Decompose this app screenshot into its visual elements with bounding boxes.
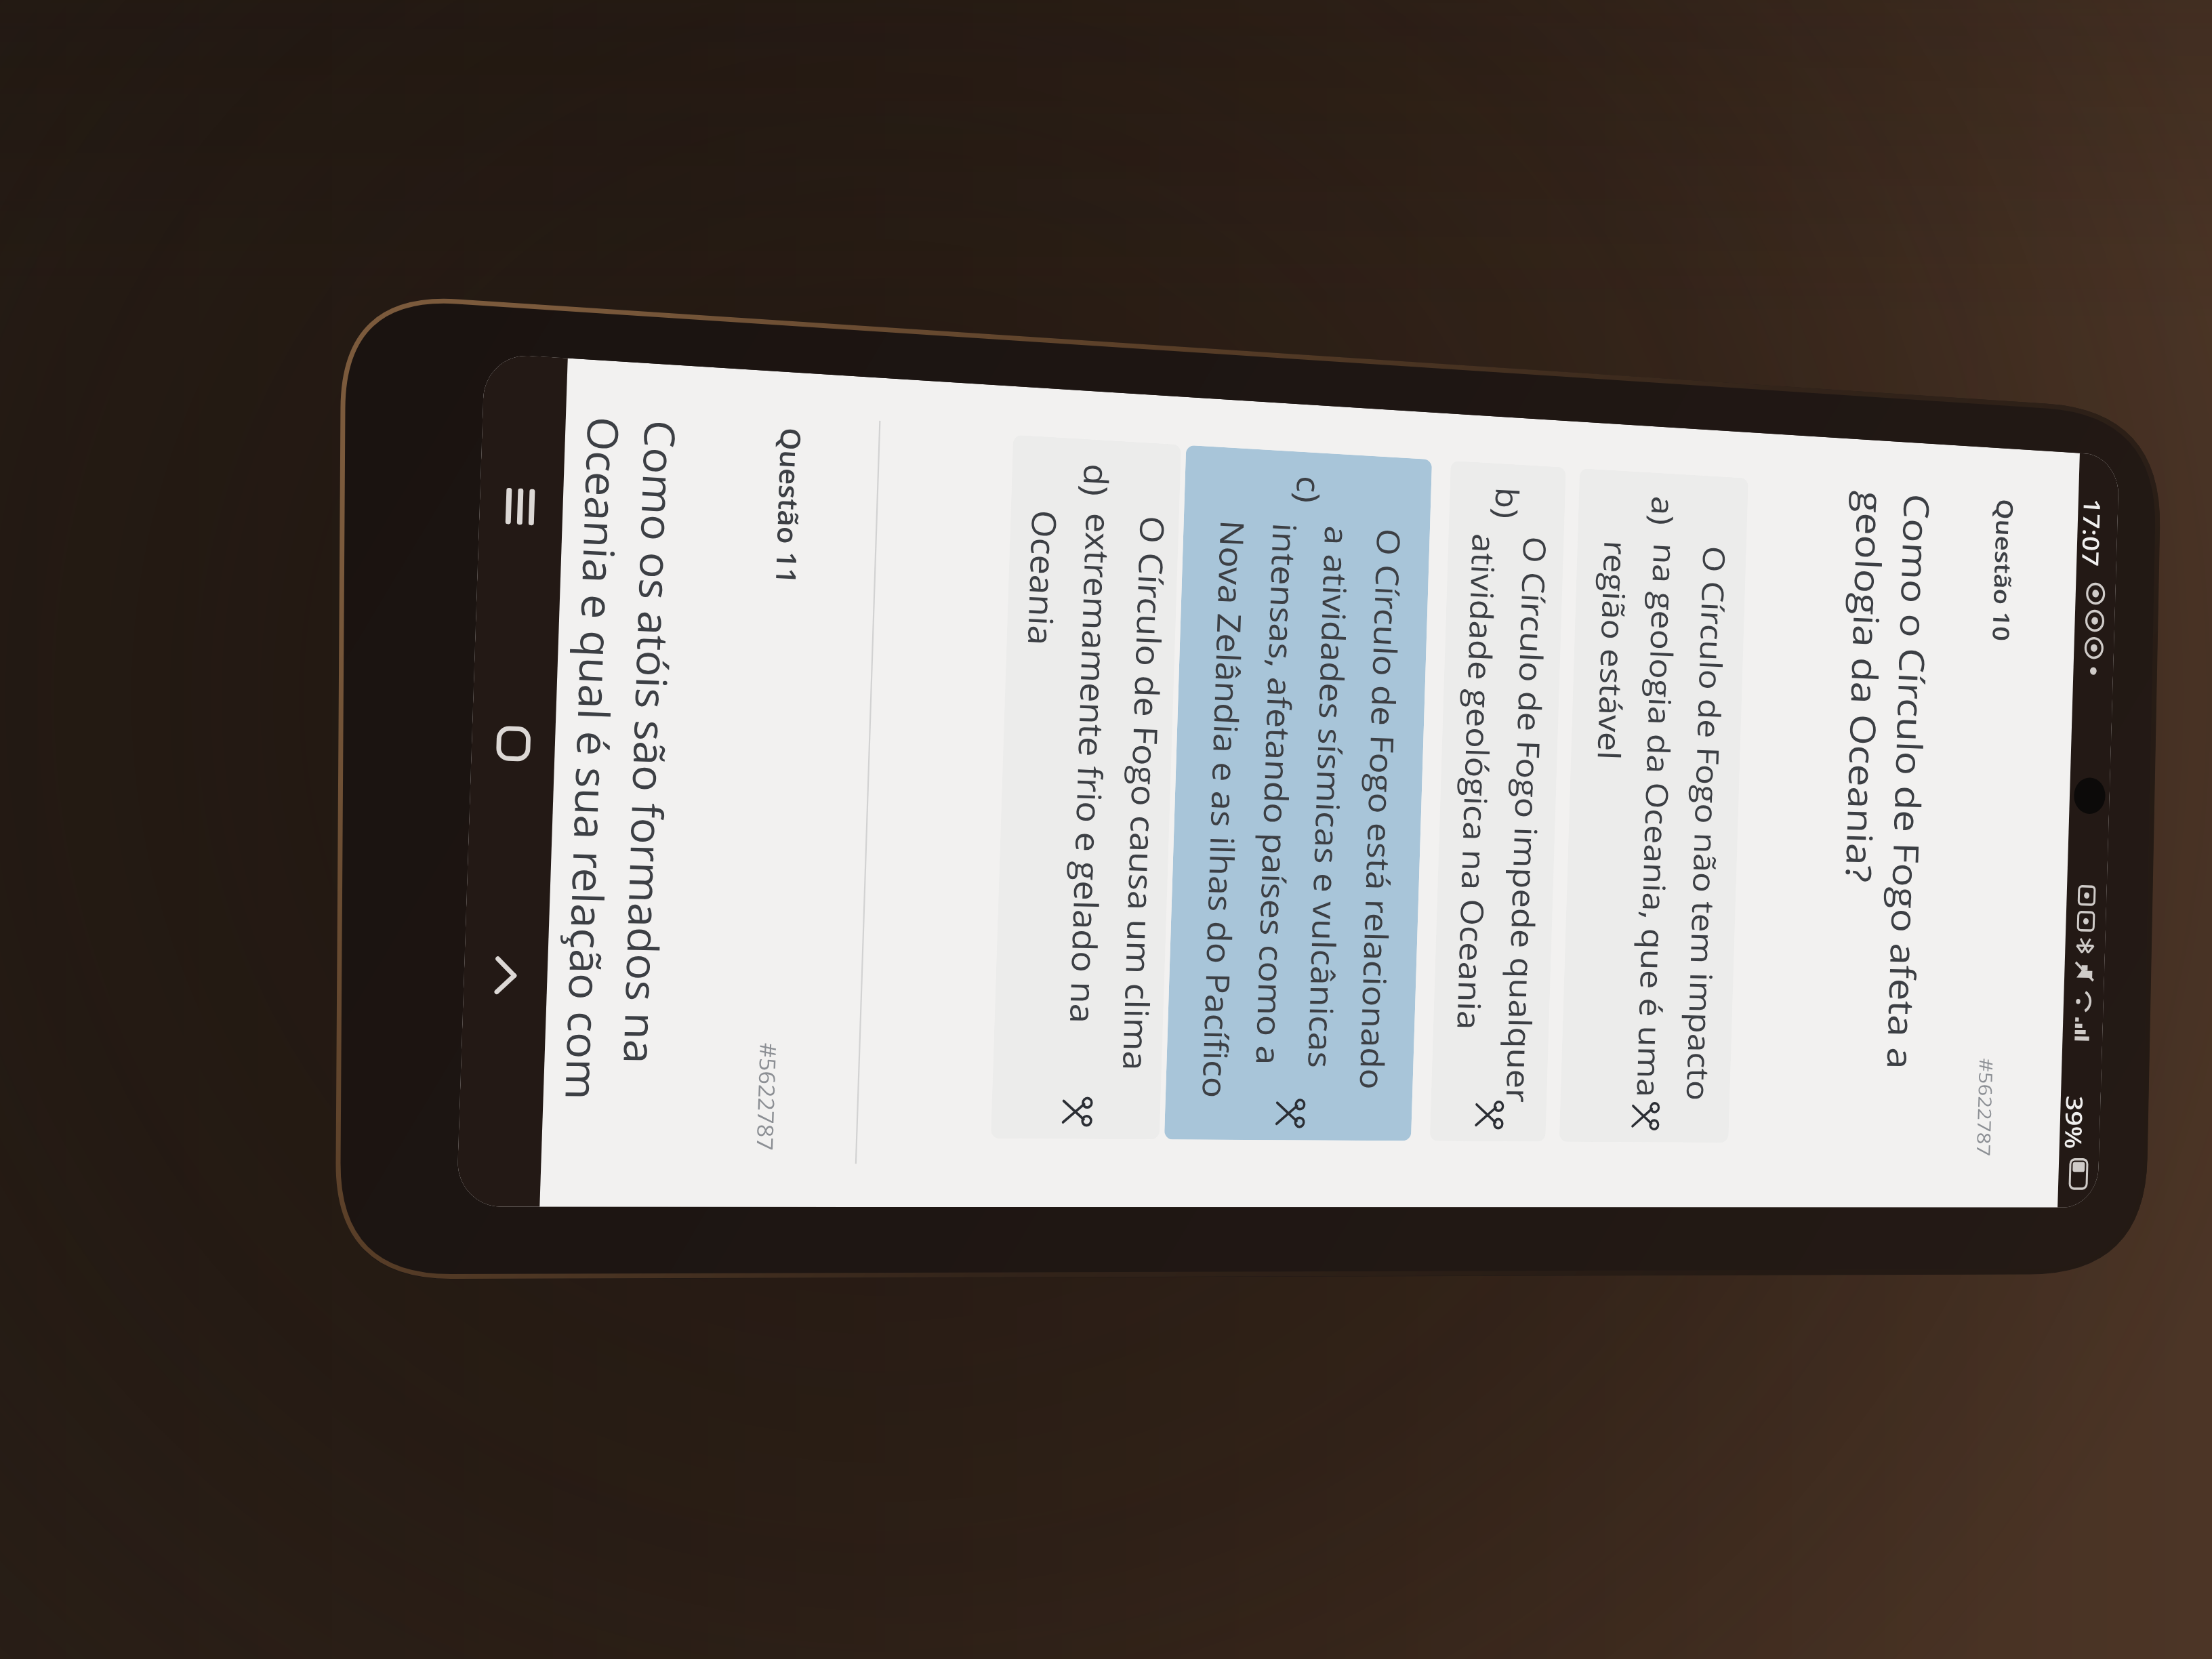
staticText: a) — [1642, 495, 1684, 527]
button[interactable]: Recortar — [1473, 1099, 1504, 1131]
staticText: Questão 10 — [1986, 498, 2021, 642]
button[interactable]: c) — [1164, 445, 1432, 1141]
staticText: Como o Círculo de Fogo afeta a geologia … — [1830, 490, 1941, 1069]
button[interactable]: Recentes — [478, 449, 565, 564]
button[interactable]: Recortar — [1060, 1095, 1093, 1128]
button[interactable]: a) — [1559, 468, 1748, 1143]
staticText: #5622787 — [1971, 1058, 1999, 1157]
staticText: c) — [1287, 475, 1331, 505]
button[interactable]: Recortar — [1274, 1097, 1305, 1130]
button[interactable]: b) — [1430, 461, 1566, 1142]
staticText: 39% — [2058, 1096, 2091, 1150]
staticText: #5622787 — [750, 1043, 784, 1151]
staticText: b) — [1486, 486, 1529, 520]
staticText: O Círculo de Fogo causa um clima extrema… — [1005, 509, 1176, 1071]
staticText: 17:07 — [2075, 498, 2109, 568]
staticText: Como os atóis são formados na Oceania e … — [553, 415, 690, 1101]
button[interactable]: d) — [991, 435, 1181, 1139]
staticText: d) — [1073, 463, 1120, 498]
staticText: O Círculo de Fogo está relacionado a ati… — [1193, 519, 1411, 1100]
staticText: Questão 11 — [769, 427, 811, 585]
button[interactable]: Recortar — [1630, 1100, 1659, 1132]
button[interactable]: Início — [470, 687, 557, 800]
staticText: O Círculo de Fogo impede qualquer ativid… — [1446, 533, 1557, 1103]
staticText: O Círculo de Fogo não tem impacto na geo… — [1579, 540, 1735, 1102]
button[interactable]: Voltar — [462, 919, 549, 1031]
